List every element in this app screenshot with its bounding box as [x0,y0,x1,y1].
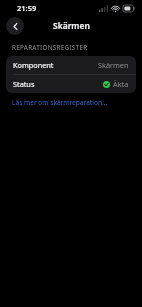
button[interactable]: Komponent [6,56,136,74]
staticText: Äkta [113,79,129,89]
staticText: Skärmen [53,20,90,32]
button[interactable]: Status [6,75,136,93]
staticText: Status [13,79,35,89]
staticText: Komponent [13,60,54,70]
button[interactable]: Tillbaka [6,17,24,35]
staticText: 21:59 [17,3,37,13]
staticText: Skärmen [98,60,129,70]
staticText: Läs mer om skärmreparation... [12,98,108,107]
button[interactable]: Läs mer om skärmreparation... [0,97,142,109]
staticText: REPARATIONSREGISTER [12,43,88,52]
